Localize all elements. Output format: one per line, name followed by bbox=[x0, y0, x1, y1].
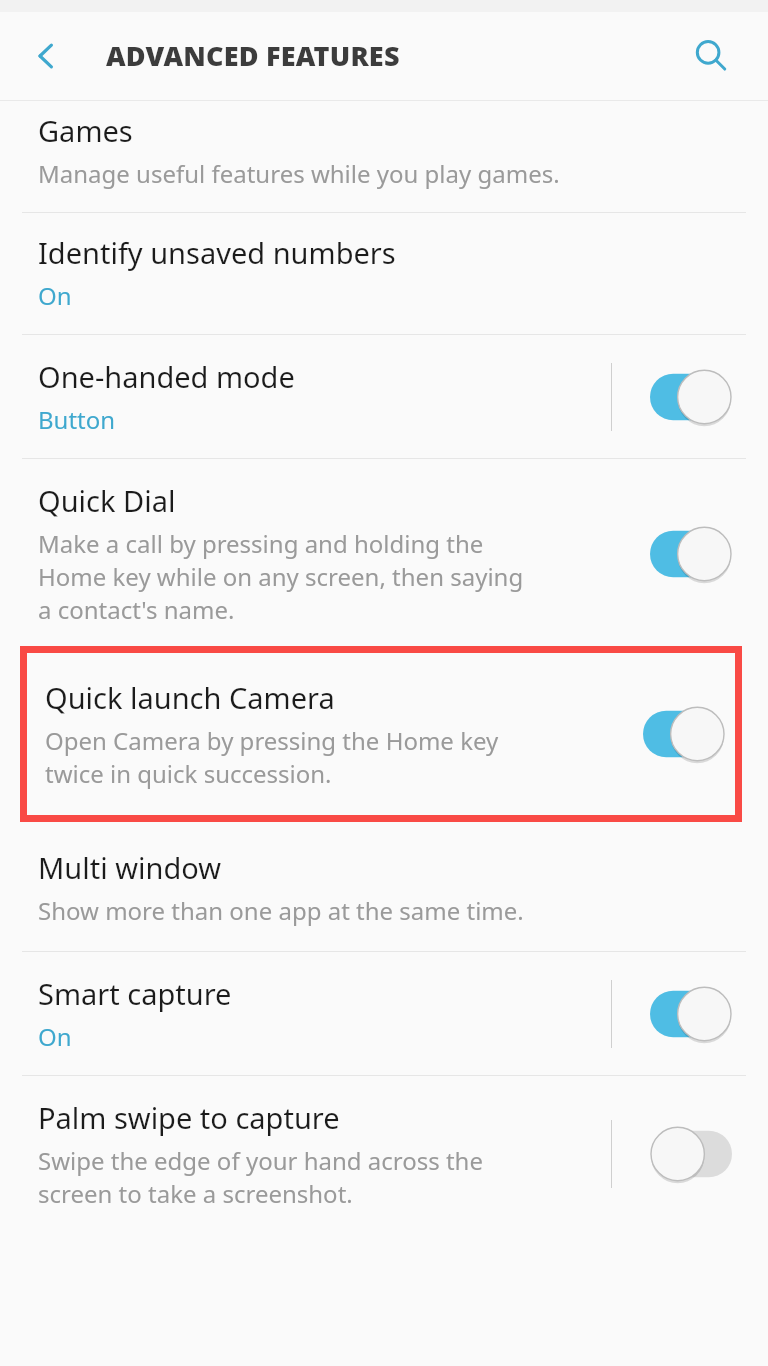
button[interactable]: Quick launch Camera bbox=[27, 653, 735, 815]
staticText: On bbox=[38, 279, 72, 312]
button[interactable]: Palm swipe to capture bbox=[0, 1076, 768, 1232]
button[interactable]: Multi window bbox=[0, 824, 768, 951]
button[interactable]: Smart capture bbox=[0, 952, 768, 1075]
staticText: Quick launch Camera bbox=[45, 678, 335, 717]
staticText: Manage useful features while you play ga… bbox=[38, 157, 560, 190]
staticText: Button bbox=[38, 403, 116, 436]
button[interactable]: Games bbox=[0, 101, 768, 212]
button[interactable]: Back bbox=[14, 24, 78, 88]
staticText: Multi window bbox=[38, 848, 221, 887]
staticText: Palm swipe to capture bbox=[38, 1098, 340, 1137]
button[interactable]: Smart capture toggle bbox=[650, 985, 732, 1043]
staticText: Quick Dial bbox=[38, 481, 176, 520]
staticText: Games bbox=[38, 111, 133, 150]
button[interactable]: One-handed mode bbox=[0, 335, 768, 458]
staticText: Make a call by pressing and holding the … bbox=[38, 527, 524, 626]
button[interactable]: Search bbox=[680, 25, 742, 87]
button[interactable]: Identify unsaved numbers bbox=[0, 213, 768, 334]
button[interactable]: Quick Dial bbox=[0, 459, 768, 644]
button[interactable]: One-handed mode toggle bbox=[650, 368, 732, 426]
button[interactable]: Quick Dial toggle bbox=[650, 525, 732, 583]
staticText: Identify unsaved numbers bbox=[38, 233, 396, 272]
staticText: One-handed mode bbox=[38, 357, 295, 396]
staticText: Swipe the edge of your hand across the s… bbox=[38, 1144, 483, 1210]
button[interactable]: Palm swipe to capture toggle bbox=[650, 1125, 732, 1183]
staticText: Open Camera by pressing the Home key twi… bbox=[45, 724, 499, 790]
staticText: Show more than one app at the same time. bbox=[38, 894, 524, 927]
staticText: Smart capture bbox=[38, 974, 232, 1013]
staticText: ADVANCED FEATURES bbox=[106, 37, 400, 74]
staticText: On bbox=[38, 1020, 72, 1053]
